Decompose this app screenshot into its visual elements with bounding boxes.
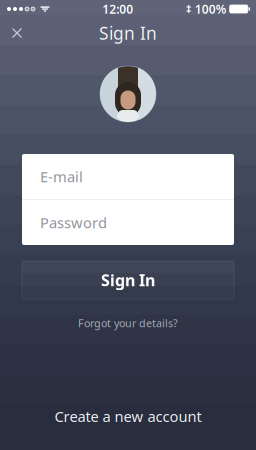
- button[interactable]: Forgot your details?: [62, 311, 194, 335]
- button[interactable]: Password: [22, 200, 234, 245]
- staticText: E-mail: [40, 167, 83, 186]
- button[interactable]: Sign In: [22, 261, 234, 299]
- button[interactable]: E-mail: [22, 154, 234, 199]
- staticText: Forgot your details?: [78, 316, 178, 330]
- staticText: Sign In: [99, 21, 157, 44]
- button[interactable]: Close: [0, 18, 34, 48]
- staticText: Password: [40, 213, 107, 232]
- staticText: Create a new account: [54, 406, 201, 426]
- button[interactable]: Create a new account: [30, 398, 225, 434]
- staticText: 100%: [195, 1, 227, 17]
- staticText: Sign In: [101, 269, 155, 291]
- staticText: 12:00: [102, 1, 133, 17]
